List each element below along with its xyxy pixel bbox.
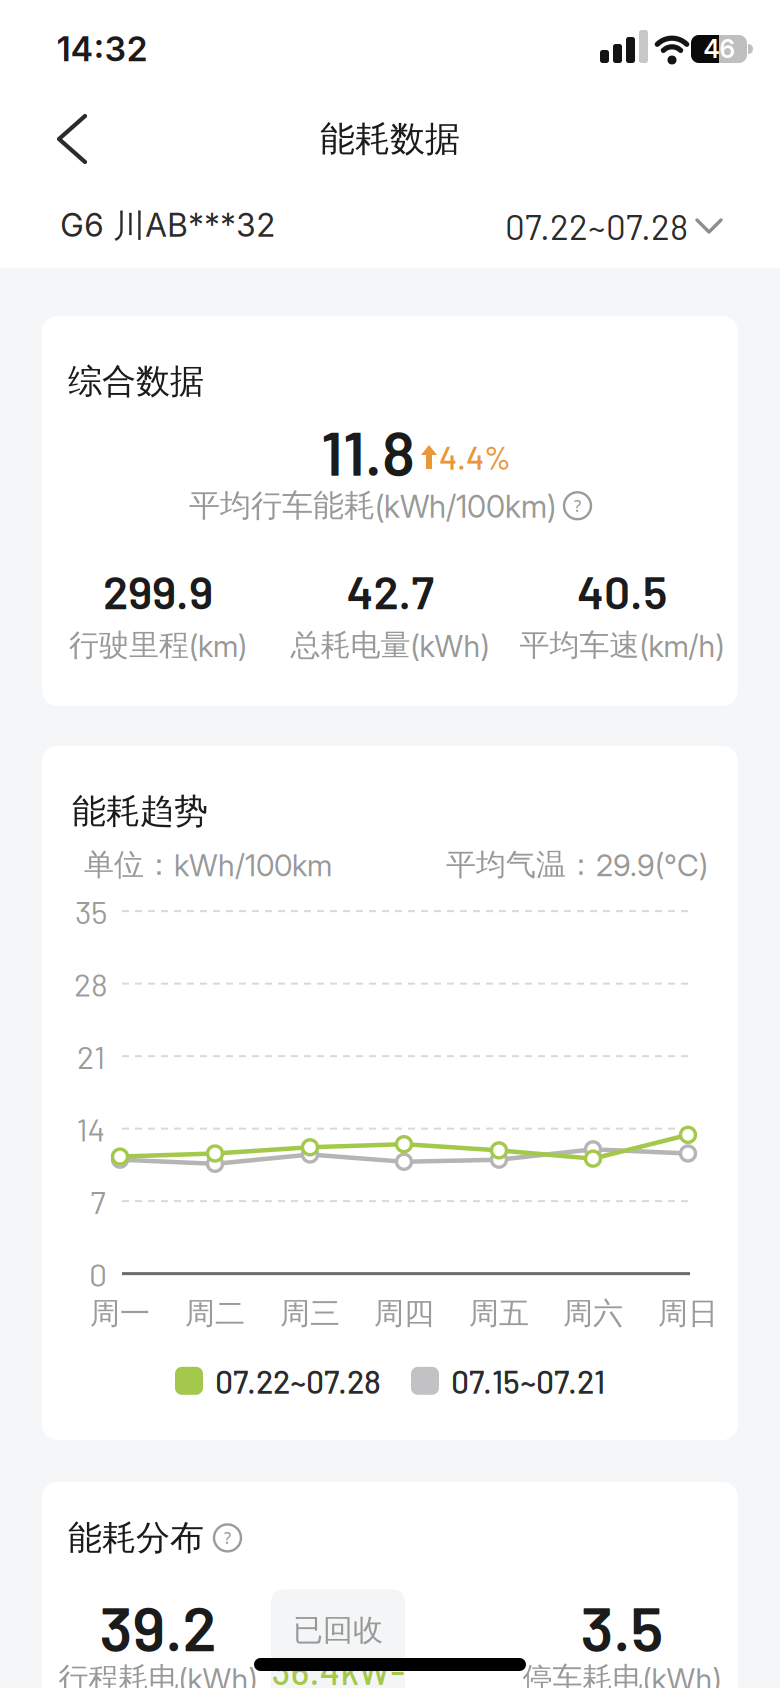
staticText: 14 (76, 1109, 105, 1148)
staticText: 周四 (374, 1295, 434, 1332)
staticText: 单位：kWh/100km (84, 846, 332, 884)
staticText: 平均行车能耗(kWh/100km) (189, 486, 556, 525)
staticText: 能耗趋势 (72, 790, 208, 833)
button[interactable]: About energy distribution (214, 1524, 241, 1551)
staticText: 0 (89, 1254, 107, 1293)
staticText: 07.22~07.28 (215, 1362, 381, 1400)
staticText: 28 (74, 964, 108, 1003)
staticText: 周一 (90, 1295, 150, 1332)
staticText: 4.4% (439, 438, 511, 476)
staticText: 21 (77, 1037, 105, 1075)
staticText: 39.2 (99, 1589, 216, 1664)
staticText: 周六 (563, 1295, 623, 1332)
staticText: 42.7 (346, 563, 433, 618)
staticText: 周三 (280, 1295, 340, 1332)
staticText: 已回收 (293, 1611, 383, 1649)
staticText: 能耗数据 (320, 117, 460, 161)
staticText: 总耗电量(kWh) (290, 626, 489, 664)
staticText: ? (224, 1527, 231, 1548)
staticText: 平均气温：29.9(°C) (446, 846, 708, 884)
staticText: 7 (90, 1182, 105, 1220)
staticText: G6 川AB***32 (60, 206, 276, 246)
staticText: 14:32 (56, 28, 147, 69)
staticText: 07.22~07.28 (505, 205, 688, 247)
button[interactable]: About average driving consumption (564, 492, 591, 519)
staticText: 平均车速(km/h) (519, 626, 724, 664)
staticText: 3.5 (580, 1589, 663, 1664)
staticText: 能耗分布 (68, 1516, 204, 1559)
staticText: ? (574, 495, 581, 516)
staticText: 36.4kWh (271, 1649, 404, 1688)
staticText: 07.15~07.21 (451, 1362, 605, 1400)
staticText: 停车耗电(kWh) (522, 1660, 721, 1688)
staticText: 周五 (469, 1295, 529, 1332)
staticText: 40.5 (577, 563, 667, 618)
staticText: 周日 (658, 1295, 718, 1332)
staticText: 11.8 (321, 414, 415, 488)
staticText: 行程耗电(kWh) (58, 1660, 257, 1688)
staticText: 35 (75, 892, 107, 930)
staticText: 299.9 (103, 563, 213, 618)
staticText: 46 (703, 34, 734, 64)
staticText: 行驶里程(km) (69, 626, 247, 664)
button[interactable]: Back (0, 114, 89, 164)
staticText: 周二 (185, 1295, 245, 1332)
staticText: 综合数据 (68, 360, 204, 403)
button[interactable]: 07.22~07.28 (505, 205, 722, 247)
